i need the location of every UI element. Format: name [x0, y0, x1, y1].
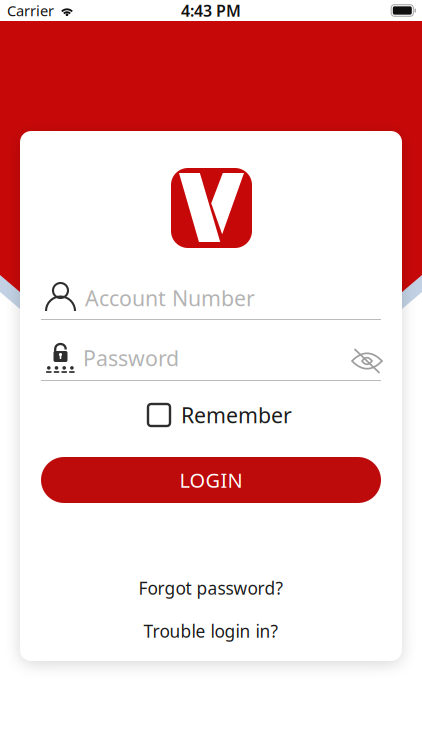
button[interactable]: Trouble login in? — [20, 616, 402, 646]
staticText: Remember — [181, 401, 292, 429]
staticText: Account Number — [85, 284, 255, 312]
button[interactable]: LOGIN — [41, 457, 381, 503]
button[interactable]: Show password — [345, 341, 389, 381]
staticText: Forgot password? — [138, 576, 283, 599]
button[interactable]: Remember — [148, 402, 303, 428]
button[interactable]: Forgot password? — [20, 573, 402, 603]
staticText: Carrier — [7, 1, 54, 20]
staticText: LOGIN — [179, 467, 242, 493]
staticText: Trouble login in? — [143, 619, 278, 642]
staticText: Password — [83, 344, 179, 372]
staticText: 4:43 PM — [181, 0, 241, 21]
